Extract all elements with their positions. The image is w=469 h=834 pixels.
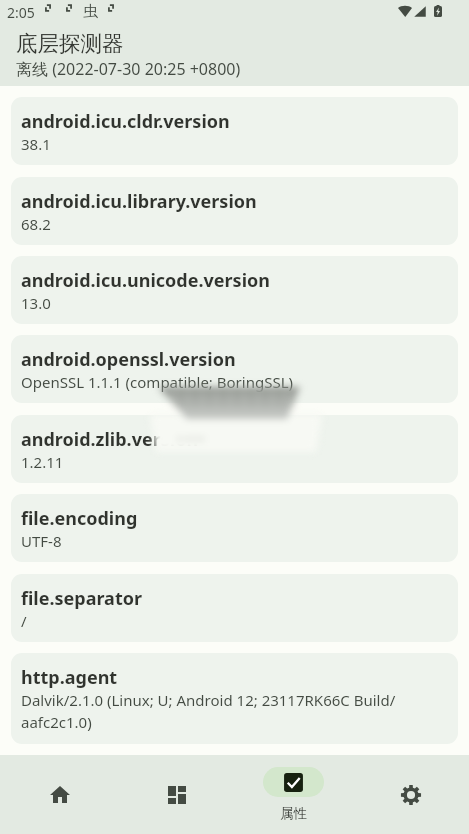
staticText: android.icu.library.version [21,189,257,214]
button[interactable]: Home [0,755,118,834]
staticText: android.icu.cldr.version [21,109,230,134]
staticText: android.openssl.version [21,347,236,372]
staticText: 离线 (2022-07-30 20:25 +0800) [16,58,241,80]
staticText: android.icu.unicode.version [21,268,270,293]
staticText: 38.1 [21,134,51,154]
staticText: 13.0 [21,293,51,313]
staticText: android.zlib.version [21,427,199,452]
staticText: http.agent [21,665,118,690]
button[interactable]: android.openssl.version [11,335,458,403]
staticText: 68.2 [21,214,51,234]
button[interactable]: http.agent [11,653,458,744]
staticText: UTF-8 [21,531,62,551]
button[interactable]: Settings [352,755,469,834]
staticText: Dalvik/2.1.0 (Linux; U; Android 12; 2311… [21,690,448,733]
staticText: / [21,611,27,631]
button[interactable]: Properties [235,755,352,834]
staticText: 属性 [280,805,307,822]
staticText: file.separator [21,586,143,611]
button[interactable]: android.icu.library.version [11,177,458,245]
button[interactable]: android.icu.cldr.version [11,97,458,165]
button[interactable]: file.encoding [11,494,458,562]
staticText: 底层探测器 [16,30,124,57]
button[interactable]: Dashboard [118,755,235,834]
staticText: 1.2.11 [21,452,64,472]
staticText: OpenSSL 1.1.1 (compatible; BoringSSL) [21,372,293,392]
button[interactable]: android.icu.unicode.version [11,256,458,324]
staticText: 2:05 [7,3,35,22]
button[interactable]: file.separator [11,574,458,642]
button[interactable]: android.zlib.version [11,415,458,483]
staticText: 虫 [83,2,98,21]
staticText: file.encoding [21,506,138,531]
